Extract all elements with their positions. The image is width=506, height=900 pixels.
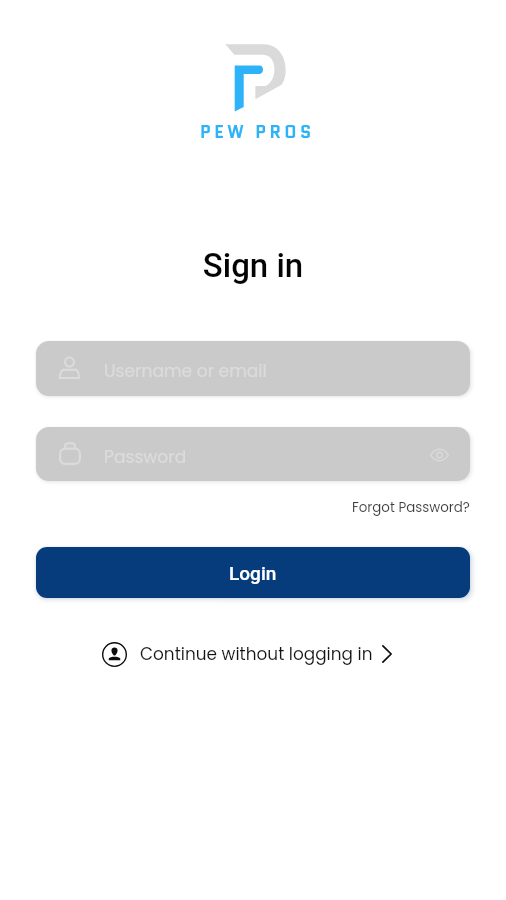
button[interactable]: Forgot Password? <box>352 498 470 517</box>
staticText: Sign in <box>0 246 506 285</box>
button[interactable]: Username or email <box>36 341 470 396</box>
staticText: Login <box>229 562 277 584</box>
staticText: PEW PROS <box>200 120 315 145</box>
button[interactable]: Show password <box>423 439 456 471</box>
staticText: Password <box>104 445 187 469</box>
staticText: Username or email <box>104 359 267 383</box>
button[interactable]: Login <box>36 547 470 598</box>
button[interactable]: Password <box>36 427 470 481</box>
button[interactable]: Continue without logging in <box>96 636 400 672</box>
staticText: Continue without logging in <box>140 642 373 666</box>
